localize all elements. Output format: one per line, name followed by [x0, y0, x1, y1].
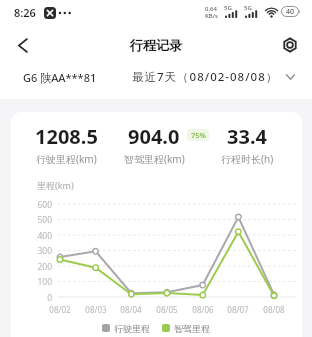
button[interactable]: 33.4	[187, 123, 307, 166]
staticText: 75%	[191, 130, 206, 140]
staticText: 最近7天（08/02-08/08）	[132, 69, 279, 85]
staticText: 08/03	[82, 304, 110, 315]
staticText: 行程时长(h)	[221, 152, 274, 166]
staticText: 5G	[244, 4, 252, 12]
staticText: 0	[22, 292, 52, 304]
staticText: 里程(km)	[37, 179, 74, 191]
staticText: 400	[22, 230, 52, 242]
staticText: 08/06	[189, 304, 217, 315]
staticText: 200	[22, 261, 52, 273]
staticText: 100	[22, 276, 52, 288]
staticText: 08/08	[260, 304, 288, 315]
staticText: 40	[281, 7, 299, 17]
staticText: 0.64	[205, 5, 217, 13]
staticText: 300	[22, 245, 52, 257]
button[interactable]: G6 陕AA***81	[14, 64, 106, 90]
staticText: 600	[22, 199, 52, 211]
staticText: 智驾里程	[174, 323, 210, 334]
staticText: 08/07	[224, 304, 252, 315]
staticText: 行驶里程	[114, 323, 150, 334]
staticText: 08/02	[46, 304, 74, 315]
button[interactable]: 最近7天（08/02-08/08）	[126, 64, 301, 90]
staticText: 智驾里程(km)	[124, 152, 185, 166]
button[interactable]: 904.0	[94, 123, 214, 166]
staticText: 1208.5	[35, 123, 98, 150]
staticText: 08/04	[117, 304, 145, 315]
staticText: 5G	[224, 4, 232, 12]
staticText: 33.4	[227, 123, 267, 150]
button[interactable]: 1208.5	[6, 123, 126, 166]
button[interactable]	[276, 31, 304, 59]
staticText: 08/05	[153, 304, 181, 315]
staticText: 行程记录	[0, 37, 312, 53]
staticText: 500	[22, 214, 52, 226]
staticText: 904.0	[128, 123, 180, 150]
staticText: 8:26	[14, 5, 36, 20]
staticText: G6 陕AA***81	[23, 70, 97, 85]
staticText: KB/s	[205, 12, 218, 20]
button[interactable]	[8, 31, 36, 59]
staticText: 行驶里程(km)	[36, 152, 97, 166]
